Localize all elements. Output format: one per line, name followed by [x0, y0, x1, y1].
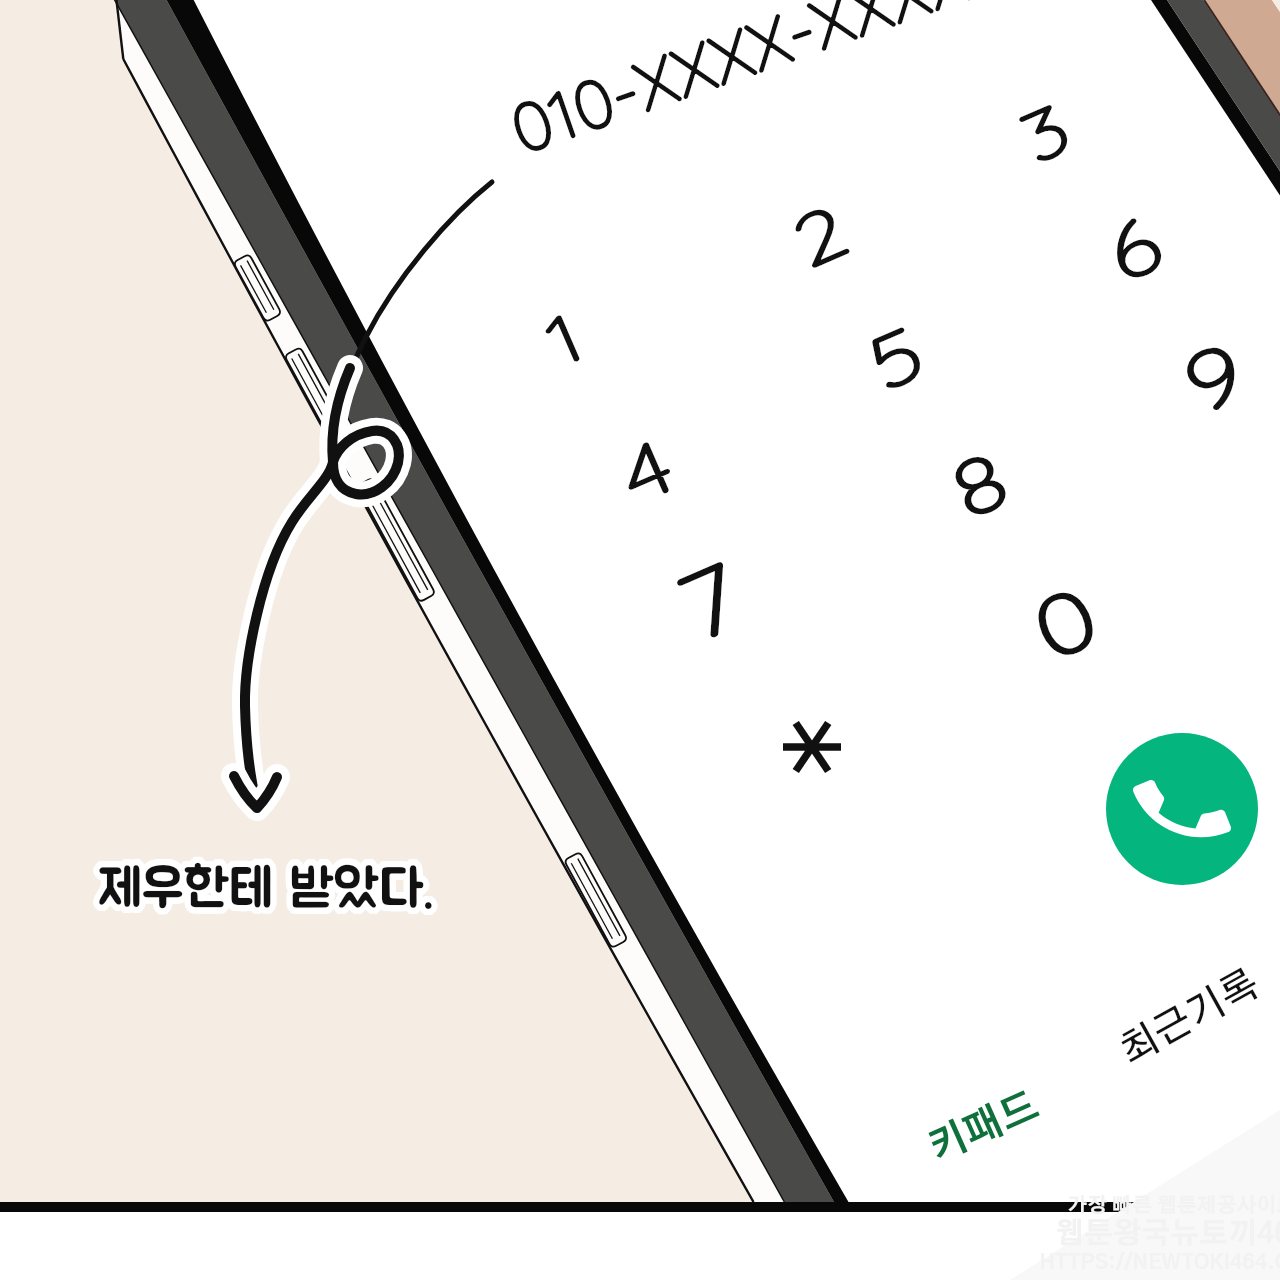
- button[interactable]: Dialer screen illustration: [0, 0, 1280, 1280]
